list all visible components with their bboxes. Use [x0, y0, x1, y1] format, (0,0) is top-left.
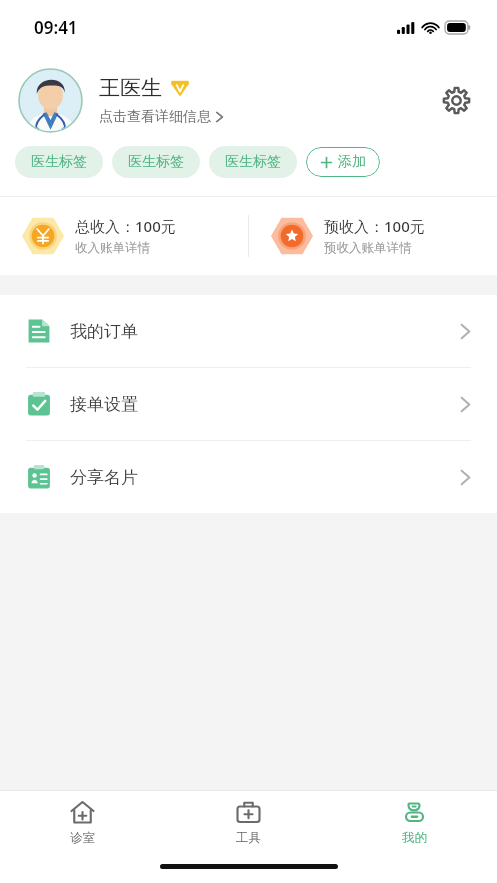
staticText: 医生标签: [31, 153, 87, 171]
staticText: 分享名片: [70, 467, 460, 488]
button[interactable]: 医生标签: [15, 146, 103, 178]
button[interactable]: 接单设置: [0, 368, 497, 440]
staticText: 王医生: [99, 75, 162, 101]
staticText: 医生标签: [128, 153, 184, 171]
staticText: 收入账单详情: [75, 240, 150, 256]
button[interactable]: 工具: [165, 791, 331, 855]
button[interactable]: 分享名片: [0, 441, 497, 513]
button[interactable]: 总收入：100元: [0, 197, 248, 275]
staticText: 工具: [236, 830, 261, 846]
staticText: 接单设置: [70, 394, 460, 415]
staticText: 总收入：100元: [75, 216, 176, 236]
staticText: 添加: [338, 153, 366, 171]
staticText: 点击查看详细信息: [99, 108, 211, 126]
button[interactable]: 王医生: [18, 54, 433, 146]
staticText: 09:41: [34, 16, 78, 39]
button[interactable]: 预收入：100元: [249, 197, 497, 275]
staticText: 诊室: [70, 830, 95, 846]
staticText: 我的: [402, 830, 427, 846]
staticText: 预收入账单详情: [324, 240, 412, 256]
button[interactable]: 诊室: [0, 791, 165, 855]
staticText: 我的订单: [70, 321, 460, 342]
staticText: 预收入：100元: [324, 216, 425, 236]
button[interactable]: 医生标签: [112, 146, 200, 178]
button[interactable]: 我的订单: [0, 295, 497, 367]
button[interactable]: 医生标签: [209, 146, 297, 178]
staticText: 医生标签: [225, 153, 281, 171]
button[interactable]: Settings: [433, 77, 479, 123]
button[interactable]: 我的: [331, 791, 497, 855]
button[interactable]: 添加: [306, 147, 380, 177]
